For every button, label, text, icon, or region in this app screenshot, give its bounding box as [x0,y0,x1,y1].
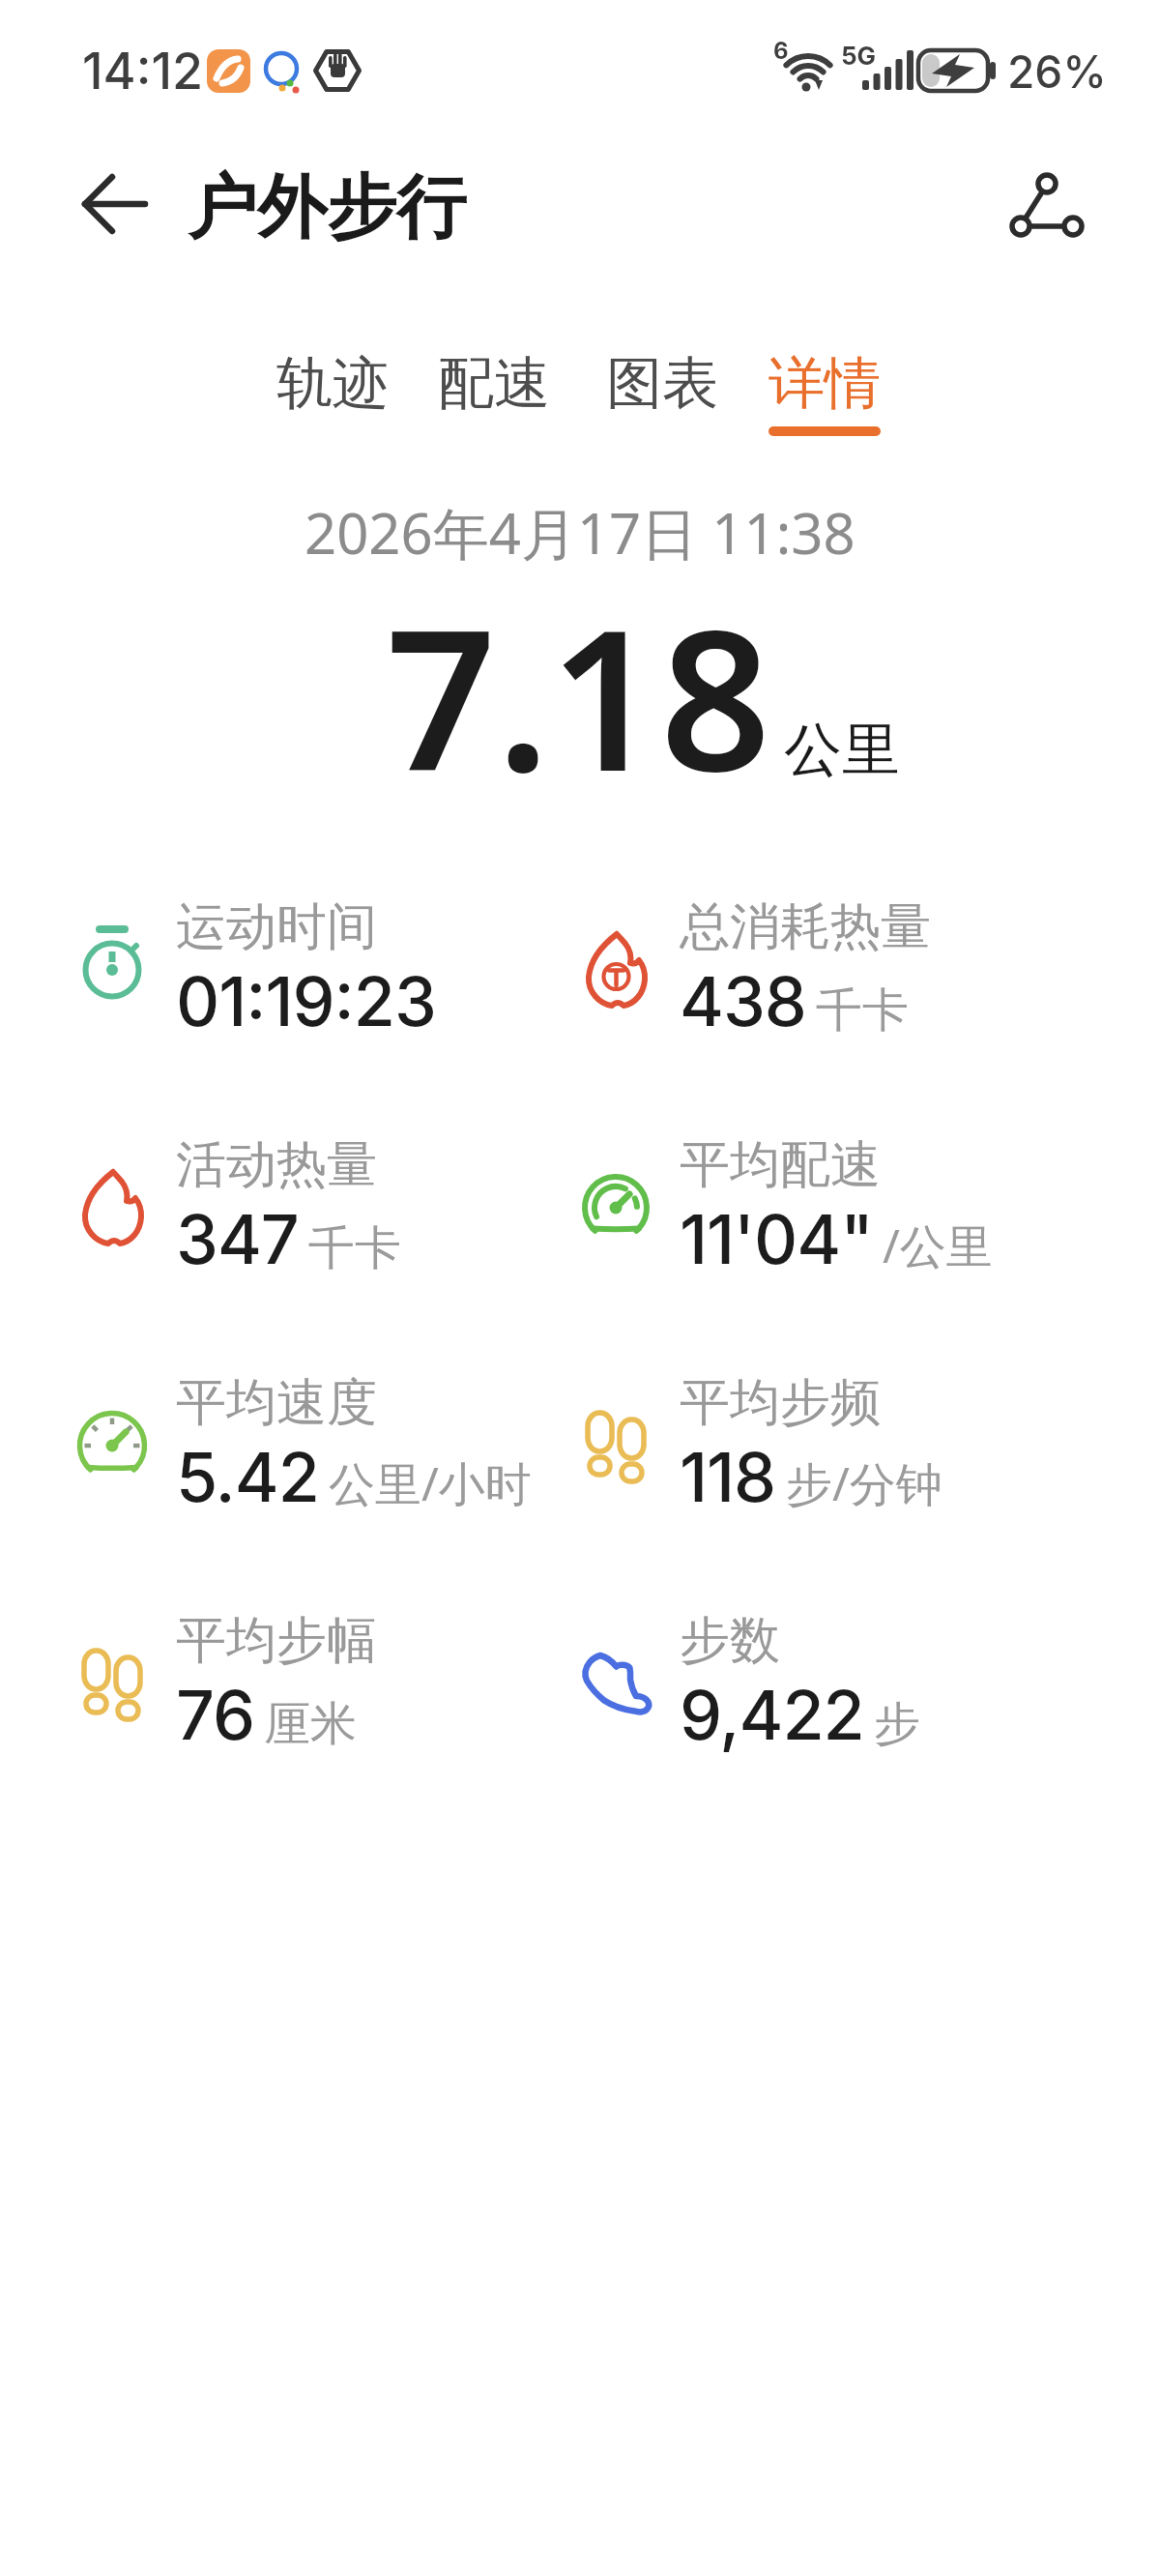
staticText: 配速 [438,348,550,419]
staticText: 26% [1007,44,1108,99]
staticText: 平均步频 [680,1371,881,1435]
staticText: 公里/小时 [329,1451,532,1515]
staticText: 千卡 [816,981,909,1039]
staticText: 户外步行 [188,164,466,252]
staticText: 步数 [680,1609,780,1673]
staticText: 运动时间 [176,895,377,959]
staticText: 438 [680,960,806,1042]
staticText: 总消耗热量 [680,895,931,959]
staticText: 步 [874,1695,920,1753]
staticText: 平均步幅 [176,1609,377,1673]
staticText: 7.18 [386,564,771,827]
staticText: 347 [176,1198,299,1280]
staticText: 厘米 [264,1695,357,1753]
staticText: 14:12 [82,41,204,102]
button[interactable] [996,160,1083,247]
button[interactable]: 图表 [587,340,738,447]
staticText: 01:19:23 [176,960,436,1042]
staticText: 详情 [768,348,881,419]
button[interactable]: 轨迹 [257,340,408,447]
button[interactable]: 详情 [749,340,900,447]
staticText: 千卡 [308,1219,401,1277]
staticText: 11'04" [680,1198,873,1280]
staticText: 2026年4月17日 11:38 [304,494,855,571]
staticText: 118 [680,1436,776,1518]
staticText: 平均速度 [176,1371,377,1435]
staticText: 步/分钟 [786,1451,942,1515]
staticText: 轨迹 [276,348,389,419]
staticText: 6 [773,37,789,65]
staticText: 图表 [606,348,718,419]
button[interactable] [73,170,143,240]
staticText: 5.42 [176,1436,319,1518]
staticText: 76 [176,1674,254,1756]
staticText: 公里 [784,714,900,787]
staticText: 平均配速 [680,1133,881,1197]
staticText: 5G [841,41,877,71]
staticText: 9,422 [680,1674,864,1756]
staticText: /公里 [883,1214,993,1277]
staticText: 活动热量 [176,1133,377,1197]
button[interactable]: 配速 [419,340,569,447]
